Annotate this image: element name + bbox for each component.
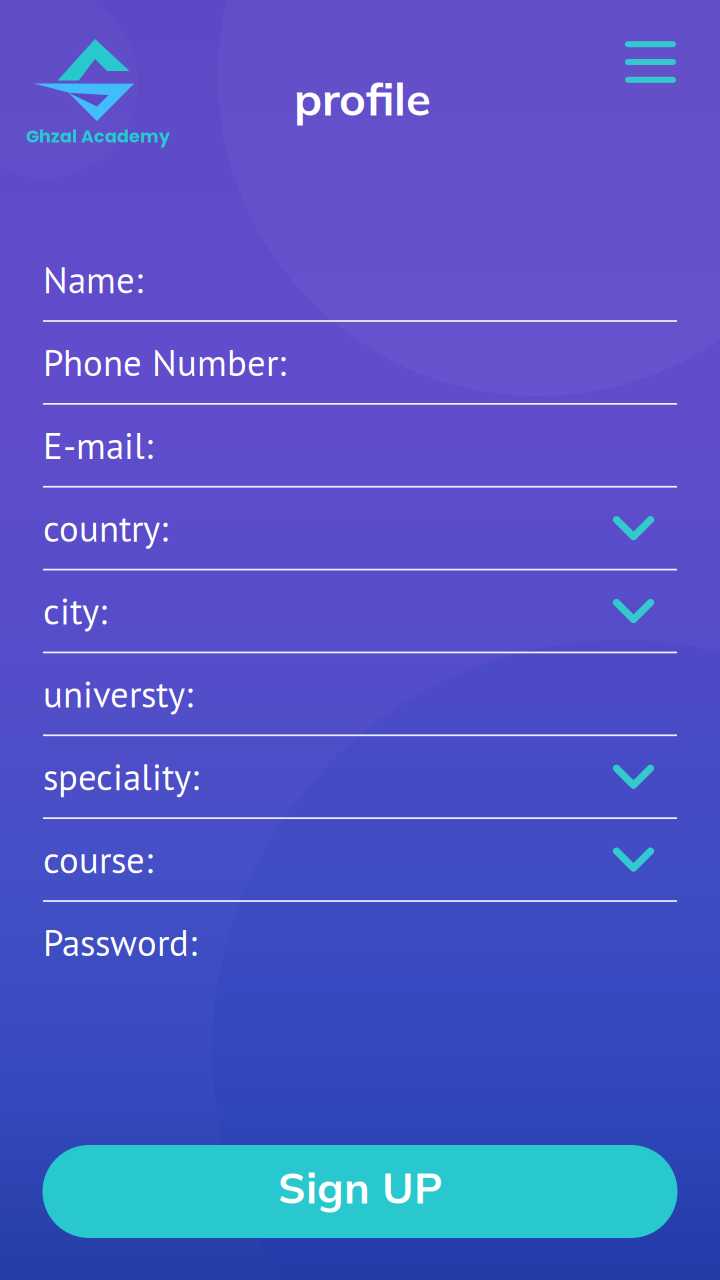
staticText: speciality:: [43, 753, 199, 800]
button[interactable]: Name:: [43, 239, 677, 322]
button[interactable]: Menu: [625, 41, 676, 83]
staticText: Phone Number:: [43, 339, 286, 386]
staticText: city:: [43, 587, 107, 635]
button[interactable]: country:: [43, 488, 677, 570]
button[interactable]: Phone Number:: [43, 322, 677, 405]
staticText: Password:: [43, 919, 197, 966]
button[interactable]: city:: [43, 570, 677, 653]
button[interactable]: Sign UP: [42, 1145, 677, 1238]
staticText: profile: [294, 70, 431, 127]
staticText: Ghzal Academy: [26, 124, 170, 149]
staticText: course:: [43, 836, 153, 883]
button[interactable]: speciality:: [43, 736, 677, 819]
button[interactable]: E-mail:: [43, 405, 677, 488]
staticText: E-mail:: [43, 422, 153, 469]
staticText: universty:: [43, 670, 193, 718]
staticText: country:: [43, 504, 168, 552]
button[interactable]: Password:: [43, 902, 677, 985]
staticText: Sign UP: [278, 1161, 442, 1214]
button[interactable]: course:: [43, 819, 677, 902]
button[interactable]: universty:: [43, 653, 677, 736]
staticText: Name:: [43, 256, 143, 303]
